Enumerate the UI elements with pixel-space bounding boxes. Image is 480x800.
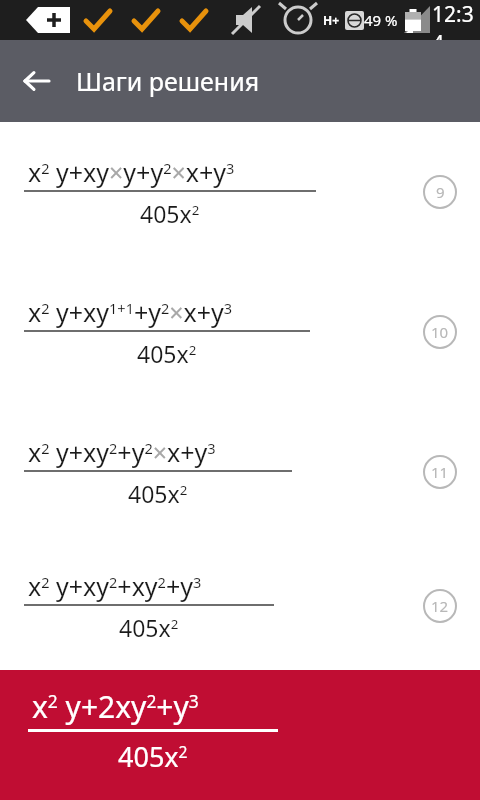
staticText: 405x2 (119, 612, 179, 643)
staticText: x2 y+xy2+y2×x+y3 (28, 435, 216, 469)
staticText: 405x2 (118, 738, 188, 775)
staticText: 9 (436, 182, 445, 202)
button[interactable]: x2 y+xy2+y2×x+y3 (0, 402, 480, 542)
button[interactable]: x2 y+xy×y+y2×x+y3 (0, 122, 480, 262)
staticText: x2 y+xy2+xy2+y3 (28, 569, 202, 603)
staticText: x2 y+xy1+1+y2×x+y3 (28, 295, 233, 329)
button[interactable]: x2 y+2xy2+y3 (0, 670, 480, 800)
staticText: 10 (431, 322, 449, 342)
staticText: x2 y+2xy2+y3 (32, 686, 199, 727)
staticText: 405x2 (137, 338, 197, 369)
button[interactable]: x2 y+xy2+xy2+y3 (0, 542, 480, 670)
staticText: x2 y+xy×y+y2×x+y3 (28, 155, 235, 189)
staticText: 405x2 (128, 478, 188, 509)
button[interactable]: Back (10, 55, 62, 107)
staticText: Шаги решения (76, 64, 260, 98)
button[interactable]: x2 y+xy1+1+y2×x+y3 (0, 262, 480, 402)
staticText: 12:34 (432, 0, 480, 40)
staticText: 11 (431, 462, 449, 482)
staticText: 49 % (364, 10, 398, 30)
staticText: 12 (431, 596, 449, 616)
staticText: H+ (323, 12, 340, 28)
staticText: 405x2 (140, 198, 200, 229)
